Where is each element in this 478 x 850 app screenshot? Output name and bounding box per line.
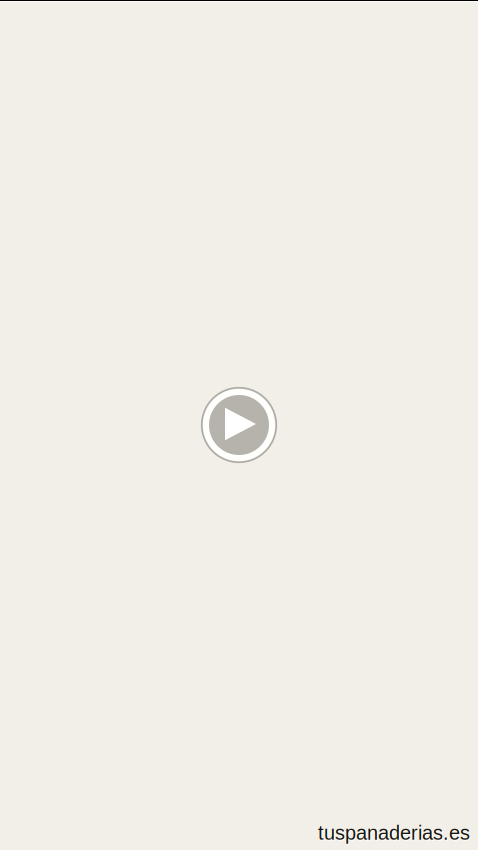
staticText: tuspanaderias.es: [319, 823, 471, 845]
button[interactable]: Play video: [195, 381, 283, 469]
staticText: tuspanaderias.es: [318, 822, 470, 844]
